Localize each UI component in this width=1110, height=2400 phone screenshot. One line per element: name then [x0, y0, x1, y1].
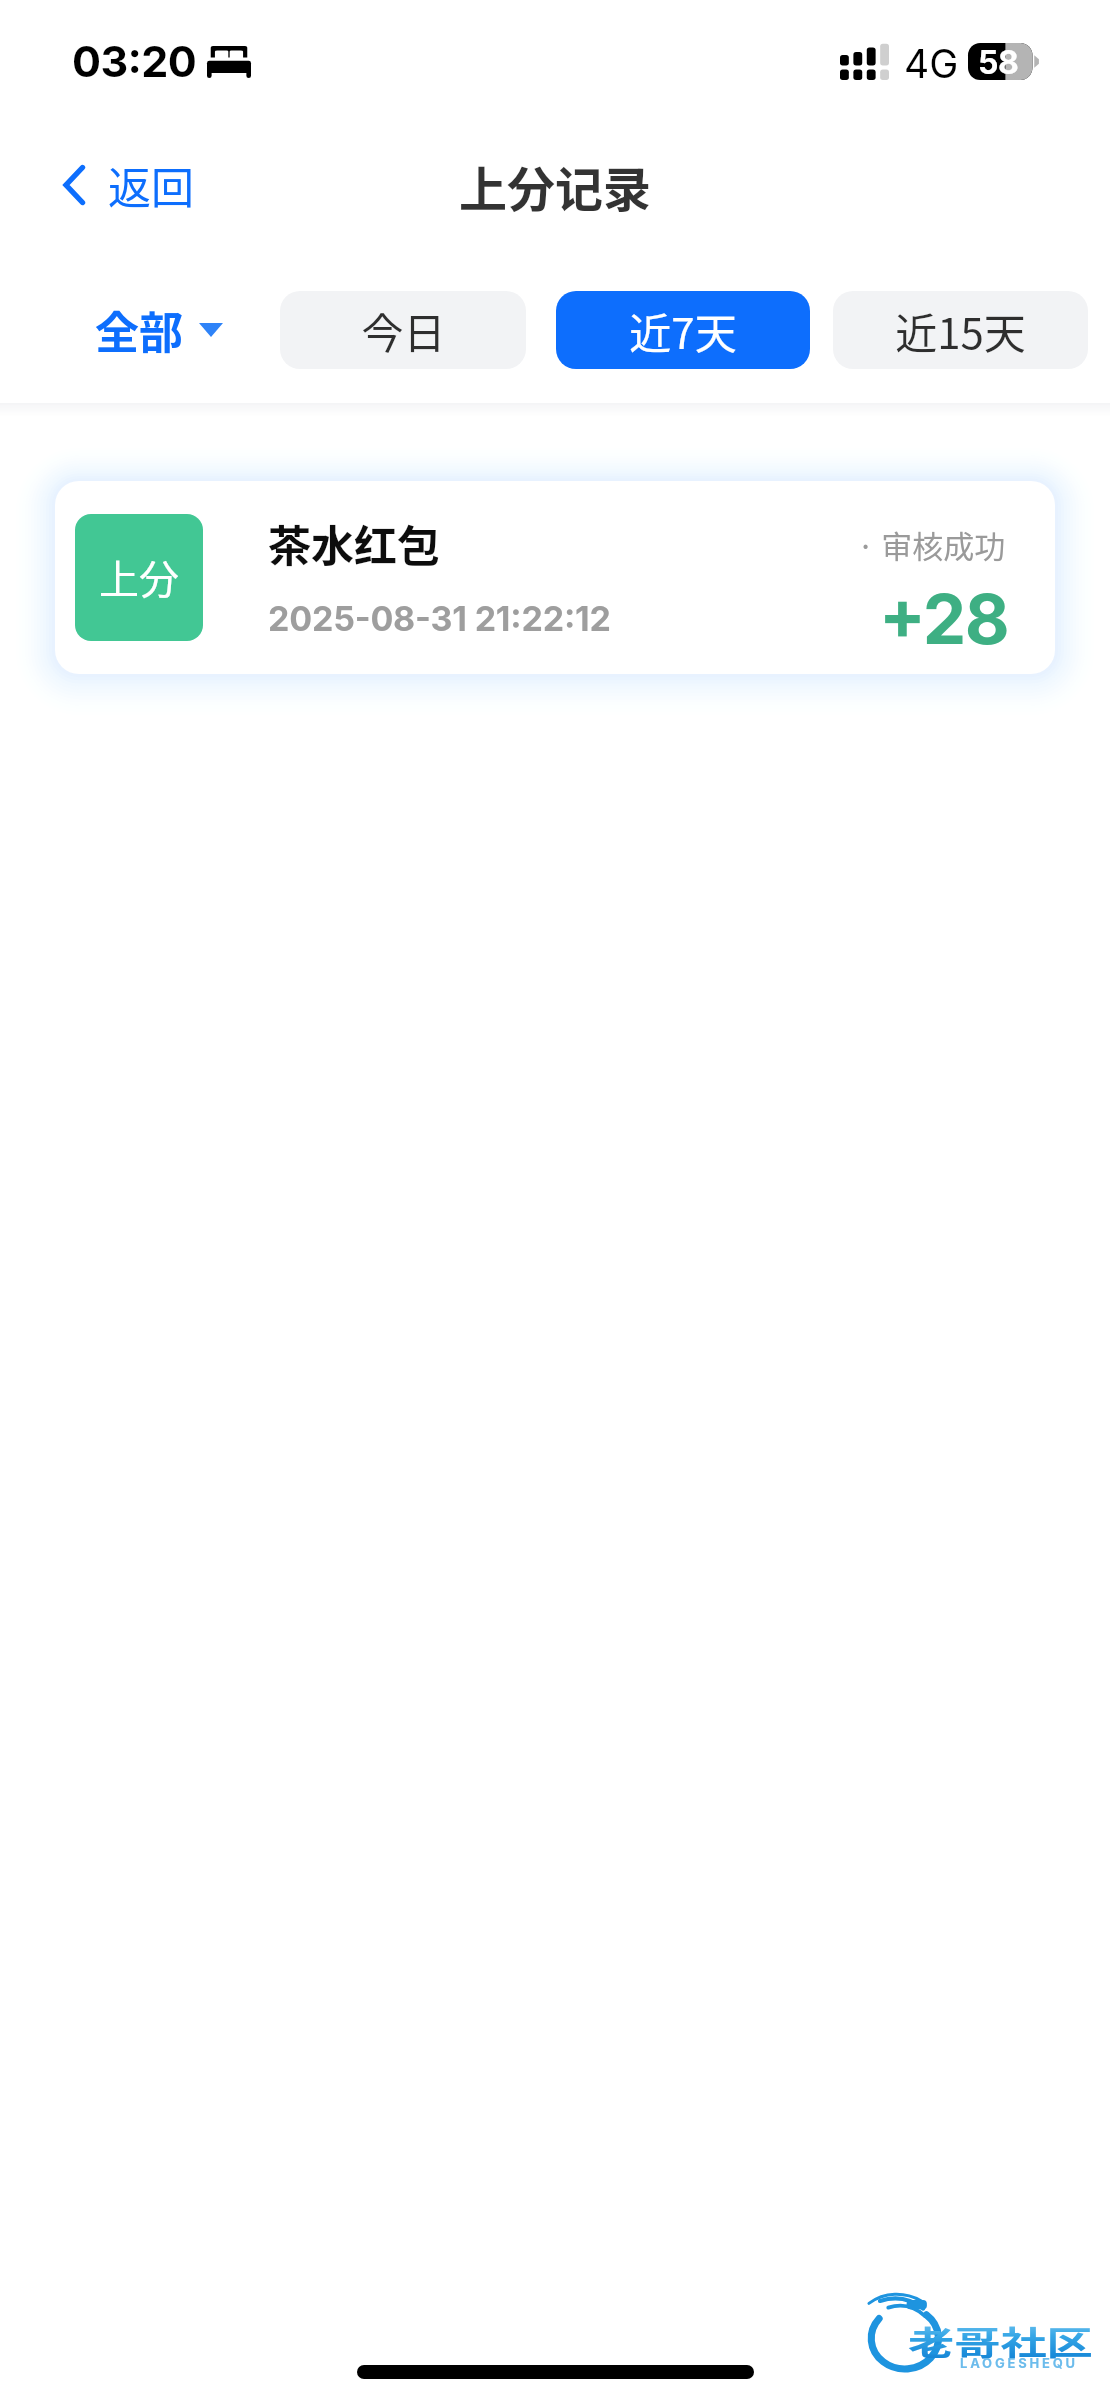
button[interactable]: 返回 — [44, 136, 220, 234]
staticText: 近15天 — [895, 300, 1026, 361]
staticText: 全部 — [95, 298, 183, 362]
other: Cellular signal — [840, 44, 889, 80]
button[interactable]: 近15天 — [833, 291, 1088, 369]
other: Sleep focus — [207, 46, 251, 78]
button[interactable]: 今日 — [280, 291, 526, 369]
staticText: LAOGESHEQU — [960, 2355, 1078, 2371]
staticText: 03:20 — [72, 35, 197, 87]
other: Battery 58 percent — [968, 43, 1040, 80]
staticText: 4G — [904, 40, 959, 87]
staticText: 返回 — [108, 154, 194, 216]
staticText: +28 — [879, 577, 1009, 660]
staticText: 上分记录 — [459, 151, 652, 221]
staticText: 今日 — [361, 300, 446, 361]
staticText: 2025-08-31 21:22:12 — [268, 598, 611, 639]
staticText: 上分 — [99, 548, 179, 606]
staticText: 老哥社区 — [908, 2317, 1093, 2365]
staticText: 茶水红包 — [268, 512, 440, 574]
button[interactable]: 近7天 — [556, 291, 810, 369]
button[interactable]: 全部 — [85, 290, 233, 370]
staticText: 近7天 — [629, 300, 737, 361]
button[interactable]: 上分 — [55, 481, 1055, 674]
staticText: · 审核成功 — [857, 522, 1006, 567]
staticText: 58 — [978, 43, 1019, 80]
